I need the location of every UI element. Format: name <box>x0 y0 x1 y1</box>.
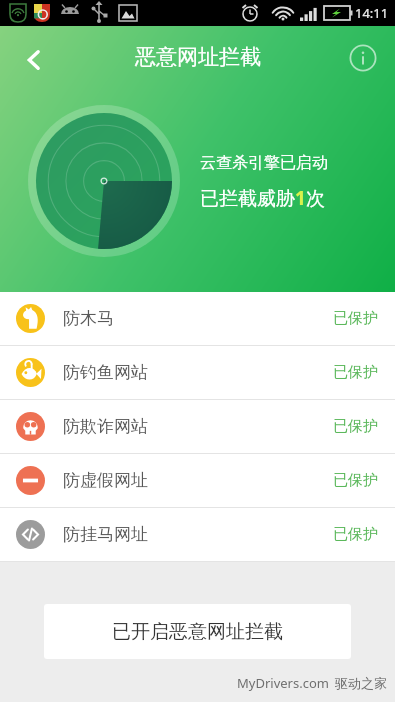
staticText: 防欺诈网站 <box>63 416 148 437</box>
staticText: 恶意网址拦截 <box>135 44 261 70</box>
staticText: MyDrivers.com <box>237 674 329 692</box>
button[interactable]: 防欺诈网站 <box>0 400 395 453</box>
staticText: 防木马 <box>63 308 114 329</box>
staticText: 已保护 <box>333 471 378 490</box>
staticText: 已开启恶意网址拦截 <box>112 620 283 644</box>
button[interactable]: 防木马 <box>0 292 395 345</box>
staticText: 已保护 <box>333 309 378 328</box>
staticText: 已保护 <box>333 417 378 436</box>
button[interactable]: 防挂马网址 <box>0 508 395 561</box>
button[interactable]: 已开启恶意网址拦截 <box>44 604 351 659</box>
staticText: 1 <box>295 185 306 211</box>
staticText: 防挂马网址 <box>63 524 148 545</box>
button[interactable]: 防虚假网址 <box>0 454 395 507</box>
staticText: 防钓鱼网站 <box>63 362 148 383</box>
button[interactable]: 防钓鱼网站 <box>0 346 395 399</box>
staticText: 已拦截威胁 <box>200 187 295 211</box>
staticText: 次 <box>306 187 325 211</box>
staticText: 已保护 <box>333 525 378 544</box>
staticText: 防虚假网址 <box>63 470 148 491</box>
staticText: 14:11 <box>355 4 389 22</box>
staticText: 已保护 <box>333 363 378 382</box>
button[interactable]: Info <box>339 34 387 82</box>
staticText: 驱动之家 <box>335 675 387 691</box>
button[interactable]: Back <box>8 34 60 86</box>
staticText: 云查杀引擎已启动 <box>200 153 328 173</box>
